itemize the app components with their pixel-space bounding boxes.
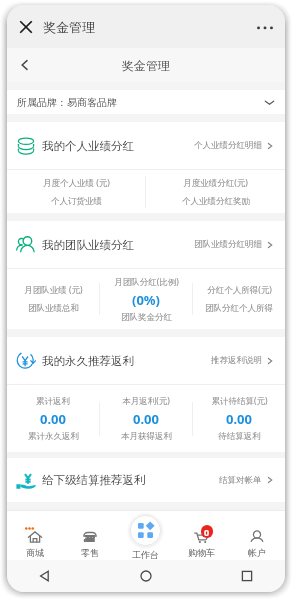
staticText: 团队奖金分红 (121, 312, 172, 323)
button[interactable]: 给下级结算推荐返利 (7, 458, 285, 502)
staticText: 个人业绩分红明细 (194, 140, 262, 151)
staticText: 0 (204, 526, 210, 538)
staticText: 月团队分红(比例) (114, 276, 179, 288)
button[interactable]: 零售 (62, 510, 117, 560)
button[interactable]: Close (18, 19, 34, 35)
staticText: 个人业绩分红奖励 (182, 196, 250, 207)
staticText: 结算对帐单 (219, 475, 262, 486)
staticText: 月度业绩分红(元) (183, 177, 248, 189)
staticText: 0.00 (40, 410, 66, 428)
staticText: 我的永久推荐返利 (42, 354, 134, 368)
staticText: 团队分红个人所得 (205, 303, 273, 314)
staticText: 0.00 (133, 410, 159, 428)
button[interactable]: 我的个人业绩分红 (7, 122, 285, 169)
staticText: 所属品牌：易商客品牌 (17, 96, 117, 109)
staticText: 我的团队业绩分红 (42, 238, 134, 252)
staticText: 给下级结算推荐返利 (42, 473, 146, 487)
staticText: 推荐返利说明 (211, 355, 262, 366)
button[interactable]: 我的团队业绩分红 (7, 221, 285, 268)
button[interactable]: Back (15, 55, 35, 75)
staticText: 待结算返利 (218, 431, 261, 442)
button[interactable]: 0 (173, 510, 229, 560)
staticText: (0%) (132, 291, 160, 309)
staticText: 本月获得返利 (121, 431, 172, 442)
staticText: 零售 (81, 547, 99, 558)
staticText: 月度个人业绩 (元) (43, 177, 110, 189)
button[interactable]: 所属品牌：易商客品牌 (7, 90, 285, 114)
button[interactable]: Recents (237, 566, 257, 586)
staticText: 奖金管理 (122, 58, 170, 73)
staticText: 奖金管理 (43, 19, 95, 35)
staticText: 团队业绩总和 (28, 303, 79, 314)
button[interactable]: More options (256, 18, 274, 36)
button[interactable]: Back (35, 566, 55, 586)
staticText: 本月返利(元) (122, 395, 170, 407)
button[interactable]: 商城 (7, 510, 62, 560)
button[interactable]: Home (136, 566, 156, 586)
staticText: 购物车 (188, 547, 215, 558)
staticText: 累计返利 (36, 396, 70, 407)
staticText: 月团队业绩 (元) (24, 284, 83, 296)
staticText: 个人订货业绩 (51, 196, 102, 207)
staticText: 工作台 (132, 549, 159, 560)
staticText: 团队业绩分红明细 (194, 239, 262, 250)
button[interactable]: 工作台 (117, 510, 173, 560)
staticText: 累计待结算(元) (211, 395, 268, 407)
staticText: 帐户 (248, 547, 266, 558)
staticText: 0.00 (226, 410, 252, 428)
button[interactable]: 我的永久推荐返利 (7, 337, 285, 384)
staticText: 商城 (26, 547, 44, 558)
staticText: 累计永久返利 (28, 431, 79, 442)
staticText: 分红个人所得(元) (207, 284, 272, 296)
staticText: 我的个人业绩分红 (42, 139, 134, 153)
button[interactable]: 帐户 (229, 510, 285, 560)
